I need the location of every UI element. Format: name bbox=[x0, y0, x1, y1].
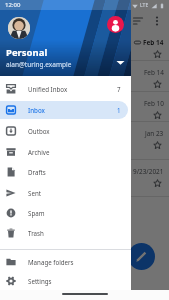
staticText: Computing machinery and bbox=[8, 50, 86, 58]
button[interactable]: Unified Inbox bbox=[0, 80, 128, 98]
staticText: intelligence — draft bbox=[8, 59, 65, 60]
staticText: Outbox bbox=[28, 127, 121, 135]
staticText: Mailing list bbox=[8, 129, 44, 139]
button[interactable]: Settings bbox=[0, 272, 128, 290]
staticText: Archive bbox=[28, 148, 121, 156]
button[interactable]: Sort bbox=[130, 13, 146, 29]
button[interactable]: Account photo bbox=[8, 17, 30, 39]
staticText: 7 bbox=[117, 85, 121, 93]
button[interactable]: Max Newman bbox=[0, 92, 169, 122]
button[interactable]: Spam bbox=[0, 204, 128, 222]
button[interactable]: Drafts bbox=[0, 163, 128, 181]
button[interactable]: Expand account list bbox=[115, 57, 126, 68]
button[interactable]: Inbox bbox=[0, 101, 128, 119]
staticText: in the group today bbox=[8, 150, 62, 158]
staticText: Archive bot bbox=[8, 167, 46, 177]
staticText: Feb 14 bbox=[143, 38, 164, 47]
staticText: up successfully. Run bbox=[8, 188, 67, 196]
staticText: Drafts bbox=[28, 168, 121, 176]
button[interactable]: Sent bbox=[0, 184, 128, 202]
button[interactable]: Archive bot bbox=[0, 160, 169, 197]
button[interactable]: Star bbox=[152, 79, 163, 90]
button[interactable]: Star bbox=[152, 110, 163, 121]
button[interactable]: Trash bbox=[0, 224, 128, 242]
staticText: Settings bbox=[28, 277, 121, 285]
staticText: LTE bbox=[140, 2, 149, 9]
staticText: 9/23/2021 bbox=[133, 167, 164, 176]
staticText: alan@turing.example bbox=[6, 60, 72, 69]
button[interactable]: Manage folders bbox=[0, 253, 128, 271]
staticText: Trash bbox=[28, 229, 121, 237]
staticText: Bletchley notes for the bbox=[8, 80, 74, 88]
staticText: Unified Inbox bbox=[28, 85, 117, 93]
staticText: Sent bbox=[28, 189, 121, 197]
button[interactable]: Alan Turing bbox=[0, 31, 169, 61]
button[interactable]: Mailing list bbox=[0, 122, 169, 160]
staticText: 1 bbox=[117, 106, 121, 114]
button[interactable]: Star bbox=[152, 49, 163, 60]
staticText: Spam bbox=[28, 209, 121, 217]
staticText: Alan Turing bbox=[8, 38, 48, 48]
button[interactable]: Star bbox=[152, 178, 163, 189]
staticText: Inbox bbox=[28, 106, 117, 114]
staticText: Digest: 14 new messages bbox=[8, 141, 82, 149]
button[interactable]: Star bbox=[152, 140, 163, 151]
staticText: Feb 10 bbox=[144, 99, 164, 108]
button[interactable]: Switch account bbox=[107, 16, 124, 33]
staticText: Personal bbox=[6, 46, 48, 59]
staticText: Feb 14 bbox=[144, 68, 164, 77]
staticText: Manage folders bbox=[28, 258, 121, 266]
staticText: Joan Clarke bbox=[8, 68, 45, 78]
button[interactable]: Compose bbox=[128, 243, 155, 270]
staticText: 12:00 bbox=[5, 1, 21, 9]
staticText: Max Newman bbox=[8, 99, 54, 109]
staticText: weekly meeting bbox=[8, 89, 54, 91]
button[interactable]: More options bbox=[149, 13, 165, 29]
button[interactable]: Joan Clarke bbox=[0, 61, 169, 92]
button[interactable]: Archive bbox=[0, 143, 128, 161]
button[interactable]: Outbox bbox=[0, 122, 128, 140]
staticText: Re: the universal machine bbox=[8, 111, 83, 119]
staticText: Jan 23 bbox=[145, 129, 164, 138]
